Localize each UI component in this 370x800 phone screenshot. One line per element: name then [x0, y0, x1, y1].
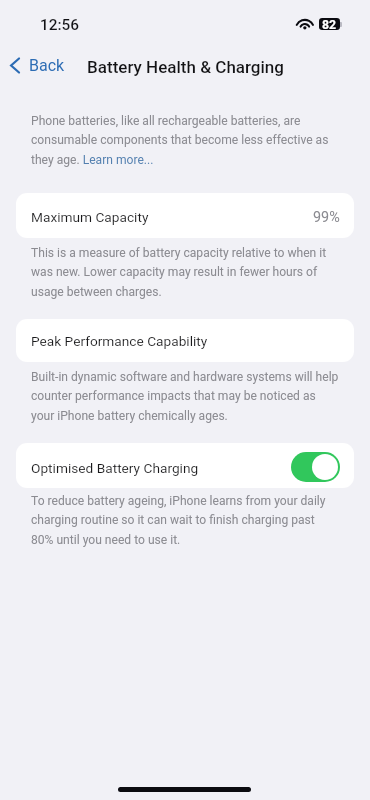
staticText: 12:56: [40, 16, 80, 34]
staticText: Built-in dynamic software and hardware s…: [31, 370, 339, 423]
staticText: 99%: [313, 209, 340, 226]
staticText: Peak Performance Capability: [31, 333, 208, 349]
button[interactable]: Back: [9, 52, 65, 78]
staticText: This is a measure of battery capacity re…: [31, 246, 339, 299]
staticText: Optimised Battery Charging: [31, 460, 199, 476]
staticText: Battery Health & Charging: [87, 57, 284, 77]
staticText: Back: [29, 56, 65, 75]
button[interactable]: Optimised Battery Charging: [291, 452, 340, 482]
staticText: Maximum Capacity: [31, 209, 149, 225]
button[interactable]: Maximum Capacity: [16, 193, 354, 238]
button[interactable]: Learn more: [79, 149, 155, 167]
staticText: 82: [322, 18, 337, 30]
staticText: To reduce battery ageing, iPhone learns …: [31, 494, 339, 547]
staticText: Phone batteries, like all rechargeable b…: [31, 114, 339, 167]
button[interactable]: Optimised Battery Charging: [16, 443, 354, 488]
button[interactable]: Peak Performance Capability: [16, 319, 354, 362]
